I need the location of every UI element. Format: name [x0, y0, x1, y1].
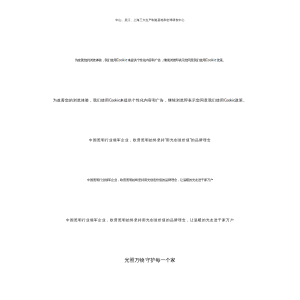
staticText: 中国照明行业领军企业，欧普照明始终坚持用光创造价值的品牌理念，让温暖的光走进千家…: [87, 178, 213, 182]
staticText: 中山、吴江、上海三大生产制造基地和全球研发中心: [115, 18, 184, 22]
staticText: 为改善您的浏览体验，我们使用Cookie来提供个性化内容和广告，继续浏览即表示您…: [53, 97, 247, 103]
staticText: 光照万物 守护每一个家: [124, 257, 175, 263]
staticText: 中国照明行业领军企业，欧普照明始终坚持用光创造价值的品牌理念，让温暖的光走进千家…: [66, 218, 234, 222]
staticText: 中国照明行业领军企业，欧普照明始终坚持“用光创造价值”的品牌理念: [89, 138, 211, 142]
staticText: 为改善您的浏览体验，我们使用Cookie来提供个性化内容和广告，继续浏览即表示您…: [74, 58, 225, 62]
